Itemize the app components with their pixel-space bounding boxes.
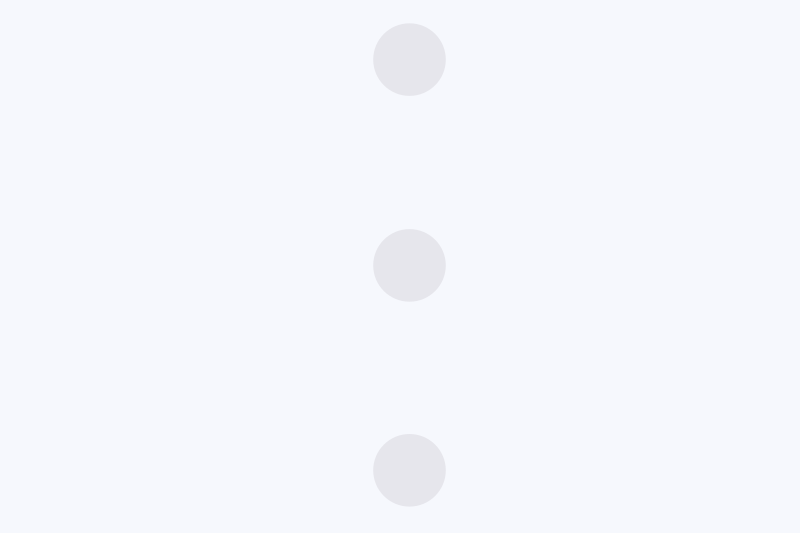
button[interactable]: Loading item [0,434,800,507]
button[interactable]: Loading item [0,23,800,96]
button[interactable]: Loading item [0,229,800,302]
